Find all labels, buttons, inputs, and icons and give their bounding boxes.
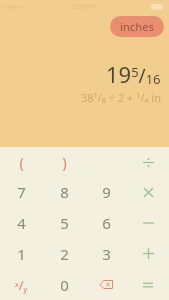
button[interactable]: Backspace <box>85 269 127 300</box>
staticText: ( <box>19 153 24 172</box>
staticText: 9 <box>102 182 111 202</box>
button[interactable]: Minus <box>127 207 169 238</box>
staticText: x/y <box>15 276 28 294</box>
button[interactable]: ) <box>43 147 85 177</box>
staticText: 5 <box>60 213 69 233</box>
staticText: inches <box>120 19 154 34</box>
staticText: 195/16 <box>106 59 161 89</box>
button[interactable]: inches <box>110 16 164 37</box>
button[interactable]: 2 <box>43 238 85 269</box>
staticText: 2 <box>60 244 69 264</box>
staticText: 4 <box>17 213 26 233</box>
staticText: Carrier <box>3 3 23 11</box>
staticText: 3 <box>102 244 111 264</box>
button[interactable]: 3 <box>85 238 127 269</box>
button[interactable]: Plus <box>127 238 169 269</box>
staticText: 8 <box>60 182 69 202</box>
button[interactable]: 8 <box>43 177 85 207</box>
staticText: 7 <box>17 182 26 202</box>
staticText: 2:39 PM <box>72 2 97 11</box>
button[interactable]: Equals <box>127 269 169 300</box>
button[interactable]: Multiply <box>127 177 169 207</box>
staticText: 1 <box>17 244 26 264</box>
staticText: ) <box>62 153 67 172</box>
button[interactable]: 5 <box>43 207 85 238</box>
staticText: 6 <box>102 213 111 233</box>
button[interactable]: 6 <box>85 207 127 238</box>
staticText: 0 <box>60 275 69 295</box>
button[interactable]: 9 <box>85 177 127 207</box>
staticText: 381/8 ÷ 2 + 1/4 in <box>81 90 161 105</box>
button[interactable]: 4 <box>0 207 43 238</box>
button[interactable]: ( <box>0 147 43 177</box>
button[interactable]: 7 <box>0 177 43 207</box>
button[interactable]: 0 <box>43 269 85 300</box>
button[interactable]: 1 <box>0 238 43 269</box>
button[interactable]: Fraction <box>0 269 43 300</box>
button[interactable]: Divide <box>127 147 169 177</box>
